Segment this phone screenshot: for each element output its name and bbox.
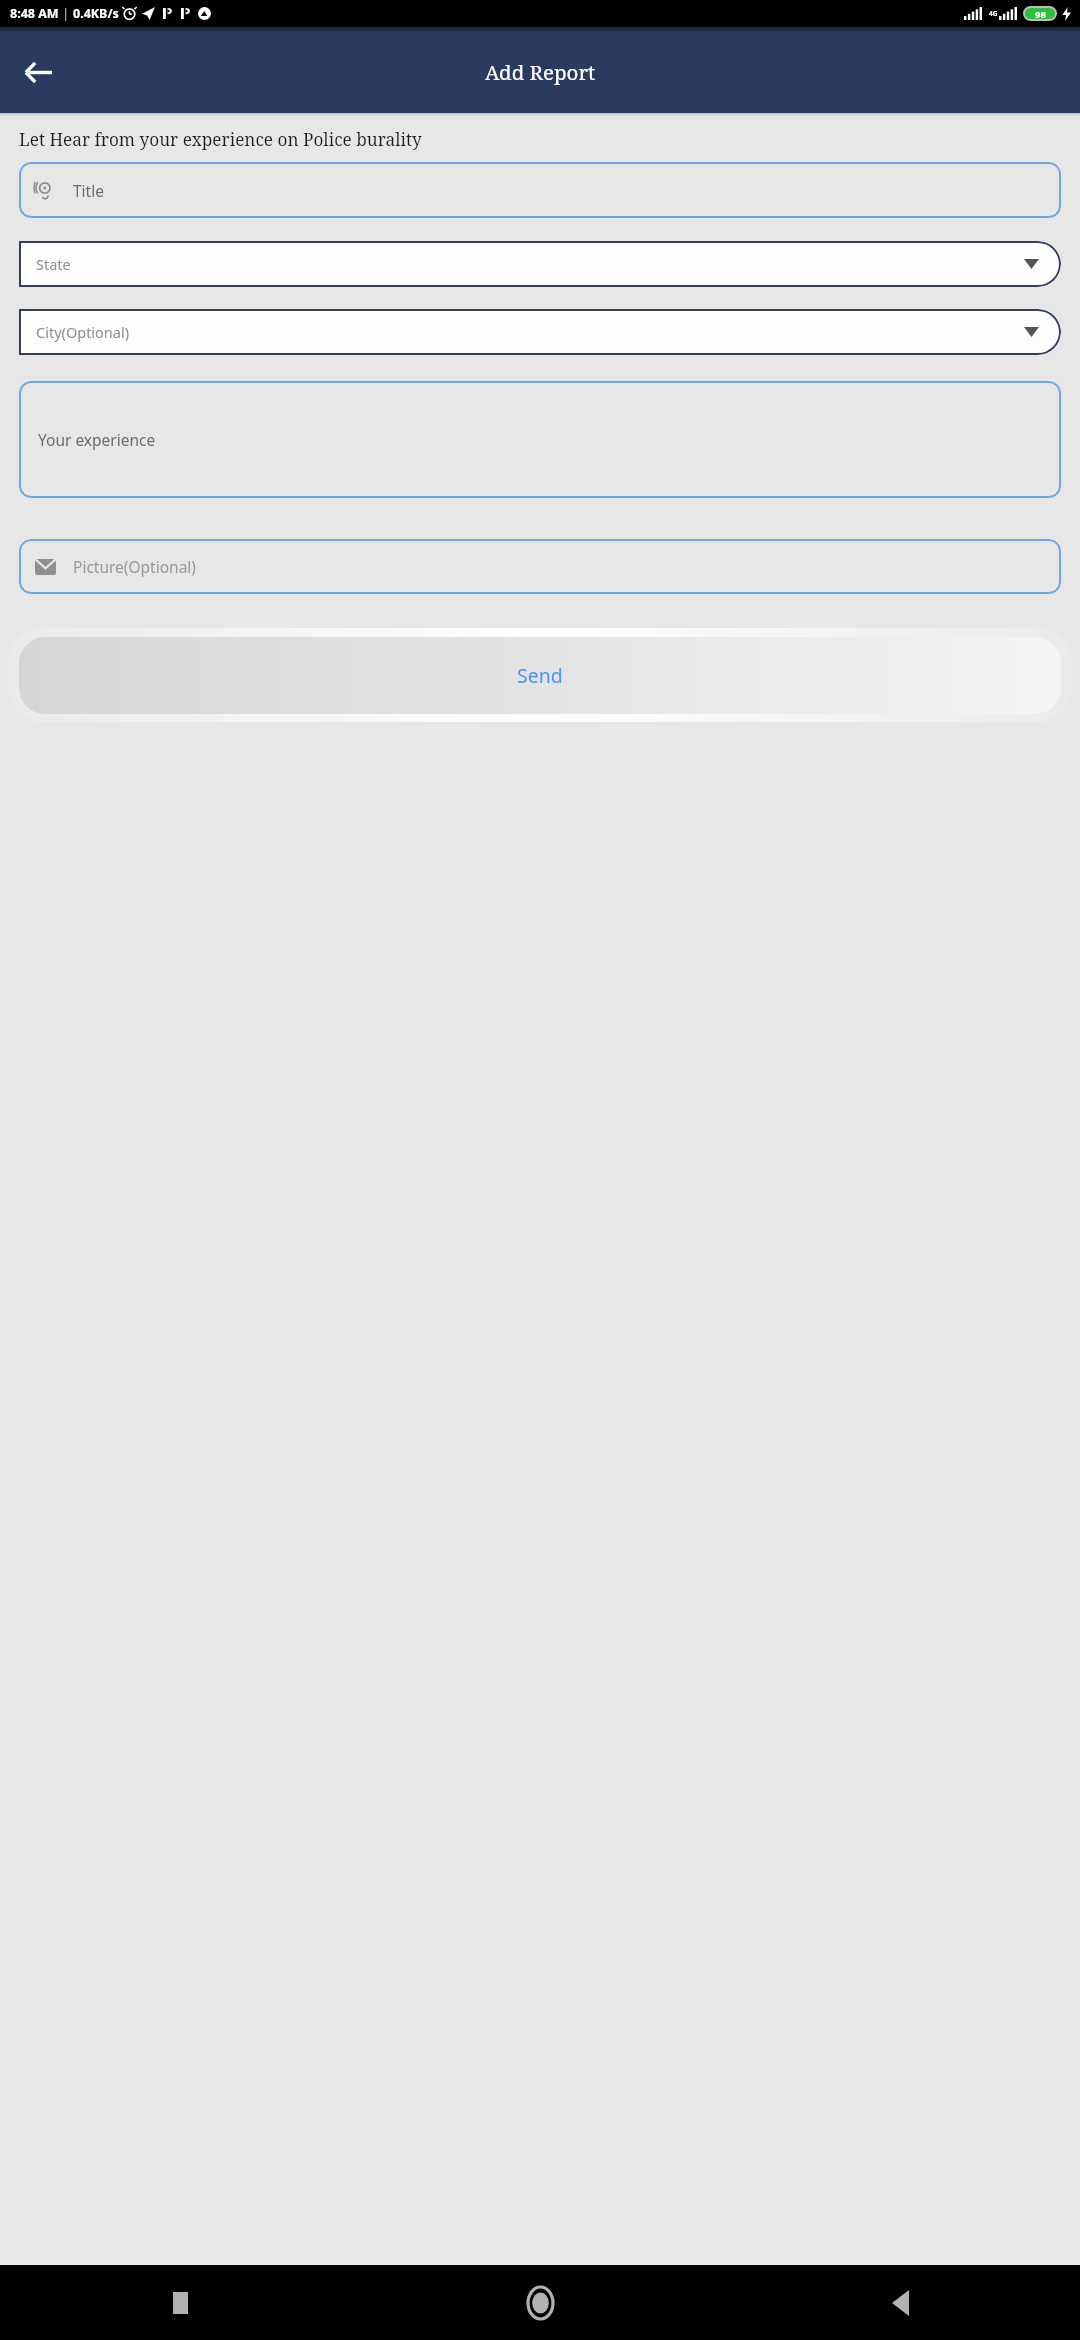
button[interactable]: Title <box>19 162 1061 218</box>
button[interactable]: City(Optional) <box>19 309 1061 355</box>
staticText: 8:48 AM <box>10 5 59 22</box>
button[interactable]: Picture(Optional) <box>19 539 1061 594</box>
staticText: | <box>59 5 73 22</box>
staticText: Add Report <box>485 58 596 86</box>
staticText: City(Optional) <box>36 322 130 342</box>
staticText: Title <box>73 180 104 201</box>
button[interactable]: Back <box>720 2265 1080 2340</box>
staticText: Picture(Optional) <box>73 556 197 577</box>
button[interactable]: Recents <box>0 2265 360 2340</box>
button[interactable]: State <box>19 241 1061 287</box>
staticText: State <box>36 254 71 274</box>
button[interactable]: Home <box>360 2265 720 2340</box>
staticText: Let Hear from your experience on Police … <box>19 128 422 151</box>
button[interactable]: Your experience <box>19 381 1061 498</box>
staticText: 98 <box>1035 8 1046 19</box>
staticText: Send <box>517 662 563 689</box>
staticText: Your experience <box>38 429 156 450</box>
button[interactable]: Back <box>13 48 61 96</box>
staticText: 4G <box>989 9 998 18</box>
button[interactable]: Send <box>19 637 1061 714</box>
staticText: 0.4KB/s <box>73 5 119 22</box>
